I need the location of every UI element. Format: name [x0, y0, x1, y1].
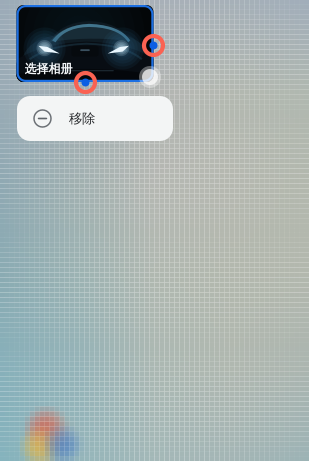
button[interactable]: 选择相册 — [16, 5, 153, 82]
button[interactable]: 移除 — [17, 96, 173, 141]
staticText: 移除 — [69, 110, 95, 127]
staticText: 选择相册 — [24, 61, 72, 76]
